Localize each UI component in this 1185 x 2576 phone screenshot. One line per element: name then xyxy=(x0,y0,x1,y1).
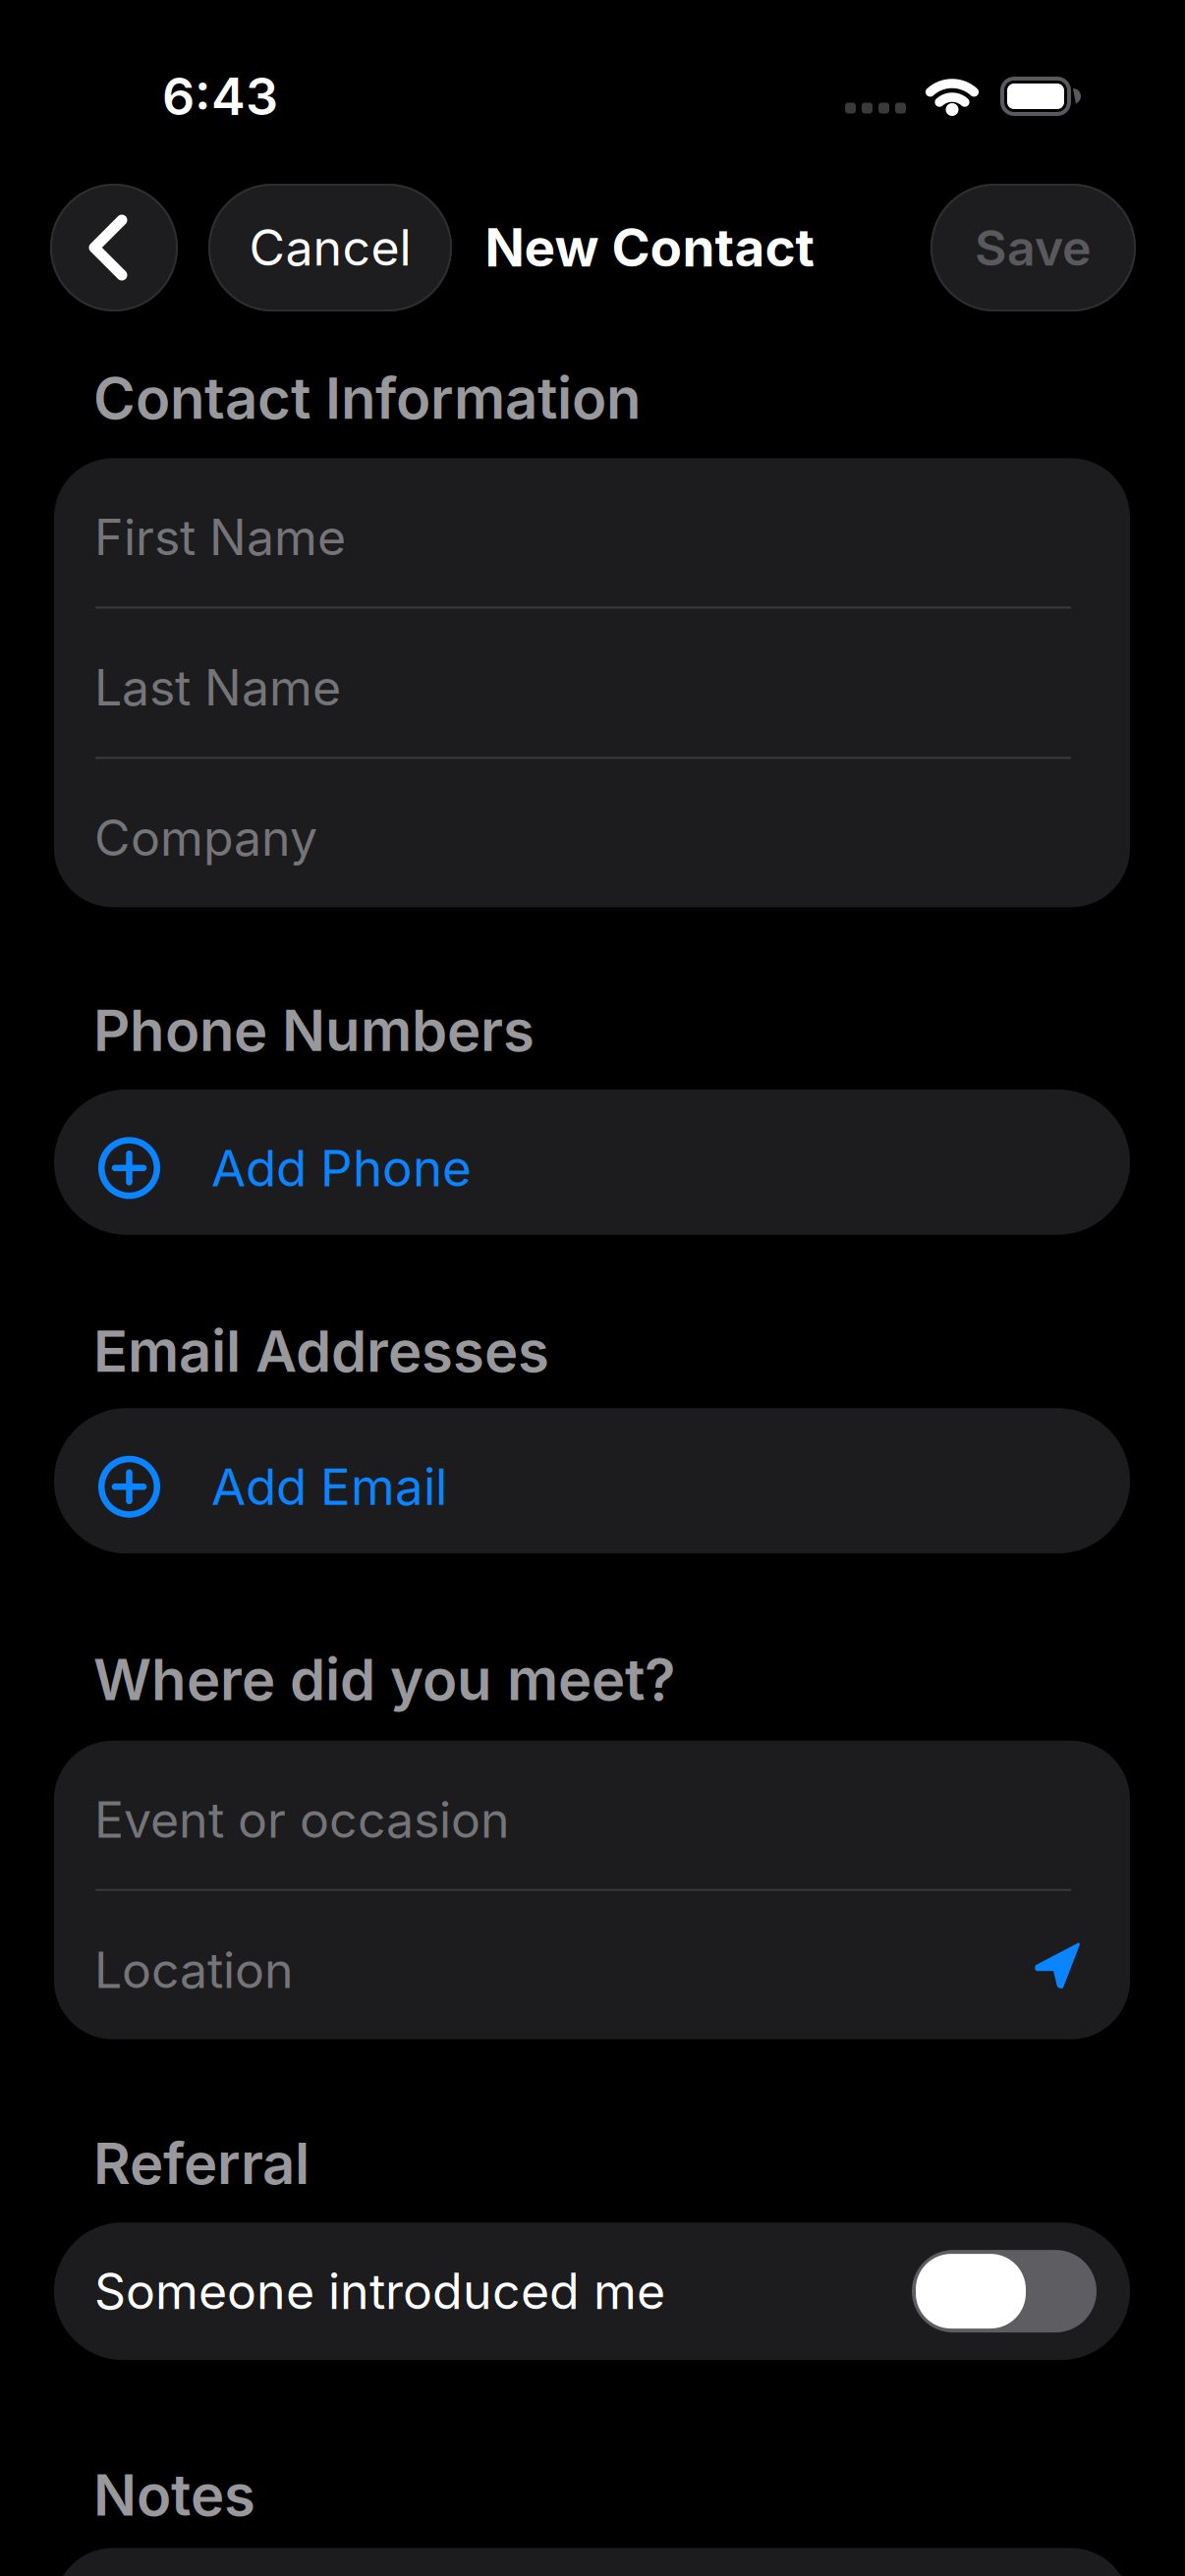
staticText: 6:43 xyxy=(162,66,278,126)
staticText: Where did you meet? xyxy=(93,1646,676,1713)
button[interactable]: Use current location xyxy=(1034,1942,1081,1989)
staticText: Location xyxy=(94,1941,294,1999)
staticText: Company xyxy=(94,809,317,867)
staticText: Referral xyxy=(93,2130,310,2197)
staticText: First Name xyxy=(94,508,346,566)
button[interactable]: First Name xyxy=(54,458,1130,607)
staticText: Contact Information xyxy=(93,364,641,432)
staticText: Email Addresses xyxy=(93,1317,549,1384)
button[interactable]: Company xyxy=(54,759,1130,907)
staticText: Someone introduced me xyxy=(94,2262,665,2320)
staticText: Cancel xyxy=(249,219,411,277)
staticText: New Contact xyxy=(485,217,814,278)
staticText: Add Email xyxy=(211,1457,447,1516)
button[interactable]: Add Email xyxy=(54,1408,1130,1554)
button[interactable]: Add Phone xyxy=(54,1089,1130,1235)
button[interactable]: Location xyxy=(54,1891,1130,2039)
button[interactable]: Last Name xyxy=(54,609,1130,757)
staticText: Notes xyxy=(93,2461,255,2528)
staticText: Add Phone xyxy=(211,1138,472,1198)
staticText: Save xyxy=(975,219,1092,277)
staticText: Last Name xyxy=(94,659,341,717)
staticText: Event or occasion xyxy=(94,1791,510,1849)
button[interactable]: Cancel xyxy=(208,184,452,311)
button[interactable]: Event or occasion xyxy=(54,1741,1130,1889)
button[interactable]: Back xyxy=(50,184,178,311)
button[interactable]: Save xyxy=(931,184,1136,311)
staticText: Phone Numbers xyxy=(93,997,535,1064)
button[interactable]: Someone introduced me xyxy=(912,2250,1097,2332)
